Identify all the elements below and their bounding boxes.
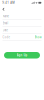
- staticText: Sign Up: [16, 53, 27, 57]
- button[interactable]: Back: [2, 7, 5, 11]
- button[interactable]: Show: [34, 35, 41, 39]
- staticText: Email: [2, 21, 8, 25]
- button[interactable]: Sign Up: [4, 52, 40, 58]
- staticText: Name: [2, 14, 9, 18]
- staticText: 9:41 AM: [2, 1, 14, 4]
- staticText: Show: [34, 35, 41, 39]
- staticText: Date: [2, 28, 8, 32]
- staticText: Code: [2, 35, 10, 39]
